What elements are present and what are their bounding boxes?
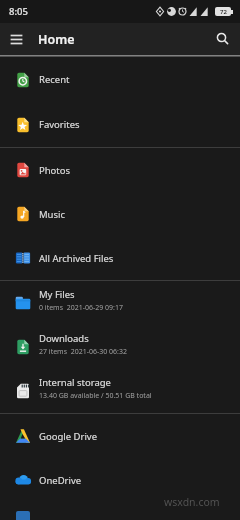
staticText: Internal storage	[39, 376, 111, 389]
staticText: Downloads	[39, 332, 89, 345]
staticText: 72	[220, 8, 227, 16]
button[interactable]: All Archived Files	[0, 236, 240, 280]
staticText: Google Drive	[39, 430, 98, 443]
button[interactable]: Recent	[0, 57, 240, 102]
staticText: 0 items 2021-06-29 09:17	[39, 303, 123, 313]
staticText: 8:05	[9, 5, 28, 18]
button[interactable]	[209, 25, 237, 53]
staticText: 13.40 GB available / 50.51 GB total	[39, 391, 152, 401]
button[interactable]: My Files	[0, 281, 240, 325]
button[interactable]: Favorites	[0, 102, 240, 147]
staticText: Recent	[39, 73, 70, 86]
button[interactable]	[2, 25, 30, 53]
button[interactable]: OneDrive	[0, 458, 240, 502]
staticText: Music	[39, 208, 66, 221]
staticText: 27 items 2021-06-30 06:32	[39, 347, 127, 357]
staticText: Favorites	[39, 118, 80, 131]
staticText: All Archived Files	[39, 252, 114, 265]
button[interactable]: Music	[0, 192, 240, 236]
staticText: OneDrive	[39, 474, 82, 487]
button[interactable]: Photos	[0, 148, 240, 192]
staticText: Home	[38, 31, 75, 48]
staticText: My Files	[39, 288, 75, 301]
staticText: wsxdn.com	[164, 495, 220, 509]
button[interactable]: Google Drive	[0, 414, 240, 458]
button[interactable]: Downloads	[0, 325, 240, 369]
button[interactable]: Internal storage	[0, 369, 240, 413]
staticText: Photos	[39, 164, 71, 177]
